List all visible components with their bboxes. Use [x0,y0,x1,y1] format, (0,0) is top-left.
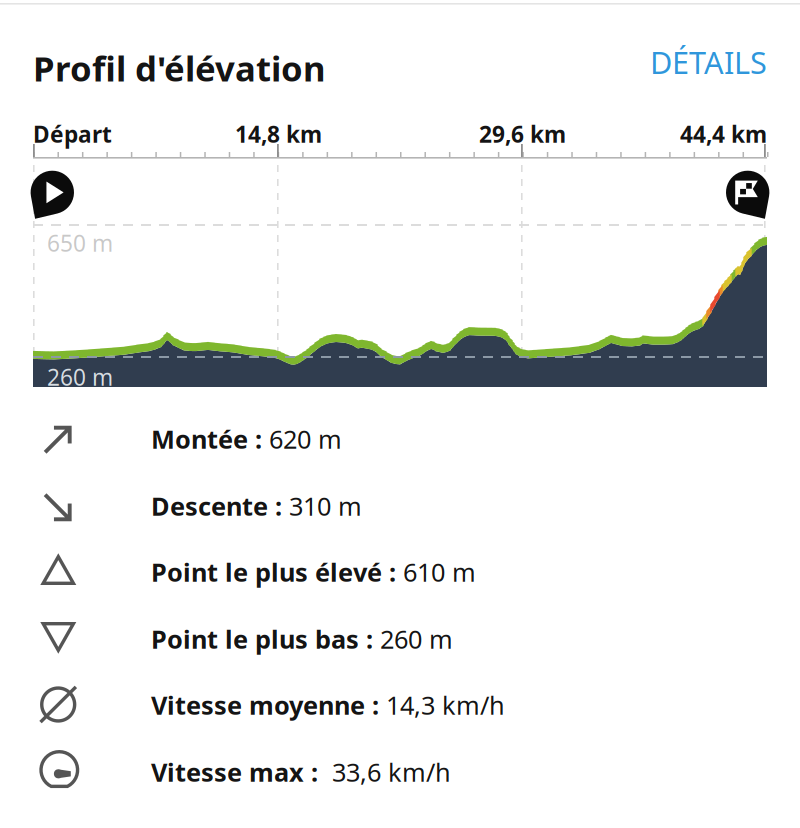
button[interactable]: Descente : [151,483,765,529]
staticText: Descente : [151,489,289,523]
button[interactable]: Vitesse moyenne : [151,682,765,728]
staticText: 260 m [380,622,453,656]
button[interactable]: Point le plus élevé : [151,549,765,595]
staticText: 33,6 km/h [325,755,451,789]
staticText: Vitesse moyenne : [151,688,386,722]
staticText: Profil d'élévation [33,45,326,91]
staticText: 44,4 km [680,119,767,149]
staticText: 14,8 km [235,119,322,149]
staticText: 14,3 km/h [386,688,505,722]
button[interactable]: Point le plus bas : [151,616,765,662]
staticText: Vitesse max : [151,755,325,789]
button[interactable]: Montée : [151,416,765,462]
staticText: Point le plus bas : [151,622,380,656]
staticText: Montée : [151,422,269,456]
staticText: DÉTAILS [650,42,767,82]
staticText: 650 m [47,228,113,258]
staticText: 310 m [289,489,362,523]
staticText: 260 m [47,362,113,392]
staticText: Départ [33,119,112,149]
button[interactable]: DÉTAILS [627,42,767,82]
staticText: 29,6 km [479,119,566,149]
staticText: Point le plus élevé : [151,555,403,589]
staticText: 610 m [403,555,476,589]
staticText: 620 m [269,422,342,456]
button[interactable]: Vitesse max : [151,749,765,795]
